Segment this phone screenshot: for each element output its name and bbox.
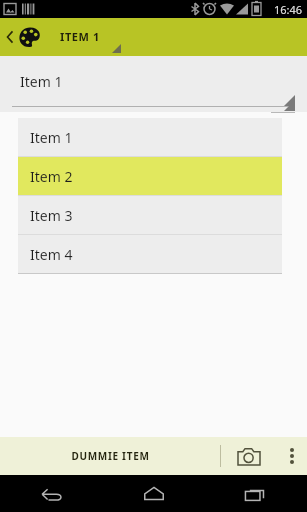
button[interactable]: More options bbox=[277, 437, 307, 475]
button[interactable]: Navigate up bbox=[0, 18, 56, 56]
button[interactable]: ITEM 1 bbox=[56, 18, 307, 56]
staticText: Item 3 bbox=[30, 206, 73, 225]
staticText: Item 1 bbox=[30, 128, 73, 147]
button[interactable]: Recent apps bbox=[205, 475, 307, 512]
staticText: ITEM 1 bbox=[60, 29, 100, 44]
staticText: 16:46 bbox=[274, 2, 303, 17]
button[interactable]: Item 1 bbox=[18, 118, 282, 156]
button[interactable]: Back bbox=[0, 475, 103, 512]
staticText: Item 4 bbox=[30, 245, 73, 264]
staticText: Item 2 bbox=[30, 167, 73, 186]
button[interactable]: DUMMIE ITEM bbox=[0, 437, 220, 475]
button[interactable]: Item 4 bbox=[18, 235, 282, 273]
button[interactable]: Home bbox=[103, 475, 205, 512]
button[interactable]: Item 1 bbox=[0, 56, 307, 112]
staticText: DUMMIE ITEM bbox=[71, 449, 150, 463]
staticText: Item 1 bbox=[20, 72, 63, 91]
button[interactable]: Item 2 bbox=[18, 157, 282, 195]
button[interactable]: Item 3 bbox=[18, 196, 282, 234]
button[interactable]: Camera bbox=[221, 437, 277, 475]
